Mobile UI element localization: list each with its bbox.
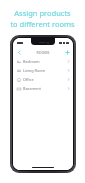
button[interactable]: Living Room (13, 66, 73, 75)
staticText: to different rooms (10, 19, 75, 29)
staticText: ROOMS (36, 50, 50, 55)
button[interactable]: Office (13, 75, 73, 84)
button[interactable]: Basement (13, 84, 73, 93)
button[interactable]: Bedroom (13, 57, 73, 66)
button[interactable]: Back (15, 48, 23, 56)
button[interactable]: Add room (63, 48, 71, 56)
staticText: Living Room (23, 68, 67, 73)
staticText: Basement (23, 86, 67, 91)
staticText: Bedroom (23, 59, 67, 64)
staticText: Office (23, 77, 67, 82)
staticText: Assign products (14, 8, 71, 18)
